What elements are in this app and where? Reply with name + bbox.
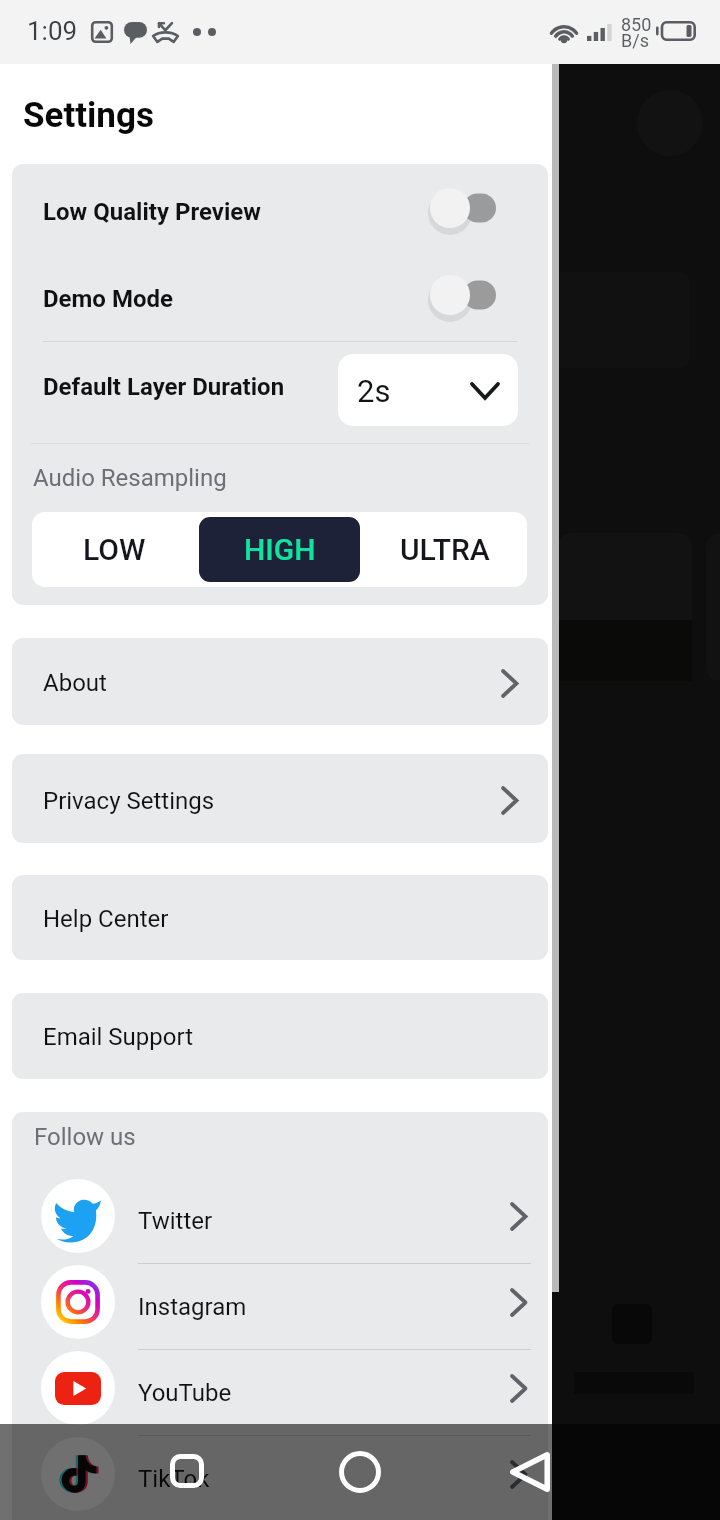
button[interactable]: ULTRA xyxy=(364,517,525,582)
staticText: Demo Mode xyxy=(43,285,174,313)
button[interactable]: Low Quality Preview xyxy=(12,164,548,255)
button[interactable]: Help Center xyxy=(12,875,548,960)
button[interactable]: HIGH xyxy=(199,517,360,582)
staticText: 2s xyxy=(357,373,391,409)
staticText: Low Quality Preview xyxy=(43,198,261,226)
button[interactable]: YouTube xyxy=(12,1345,548,1431)
button[interactable]: Privacy Settings xyxy=(12,754,548,843)
button[interactable]: Email Support xyxy=(12,993,548,1079)
staticText: Default Layer Duration xyxy=(43,373,285,401)
staticText: LOW xyxy=(83,532,146,567)
button[interactable]: LOW xyxy=(34,517,195,582)
staticText: Settings xyxy=(23,95,154,136)
staticText: Email Support xyxy=(43,1023,194,1051)
button[interactable]: About xyxy=(12,638,548,725)
staticText: ULTRA xyxy=(400,532,490,567)
button[interactable]: Twitter xyxy=(12,1173,548,1259)
staticText: About xyxy=(43,669,107,697)
staticText: Twitter xyxy=(138,1207,213,1235)
staticText: Audio Resampling xyxy=(33,464,227,492)
staticText: HIGH xyxy=(244,532,316,567)
staticText: TikTok xyxy=(138,1465,210,1493)
staticText: B/s xyxy=(621,30,649,51)
button[interactable]: Back xyxy=(510,1452,550,1492)
button[interactable]: Instagram xyxy=(12,1259,548,1345)
staticText: Help Center xyxy=(43,905,169,933)
button[interactable]: Home xyxy=(339,1451,381,1493)
button[interactable]: Recent apps xyxy=(170,1454,204,1488)
staticText: Follow us xyxy=(34,1123,136,1151)
staticText: 850 xyxy=(621,14,652,35)
button[interactable]: Demo Mode xyxy=(12,255,548,342)
staticText: 1:09 xyxy=(27,16,78,46)
staticText: Privacy Settings xyxy=(43,787,215,815)
staticText: YouTube xyxy=(138,1379,232,1407)
button[interactable]: TikTok xyxy=(12,1431,548,1517)
staticText: Instagram xyxy=(138,1293,247,1321)
button[interactable]: 2s xyxy=(338,354,518,426)
button[interactable]: Default Layer Duration xyxy=(12,342,548,443)
